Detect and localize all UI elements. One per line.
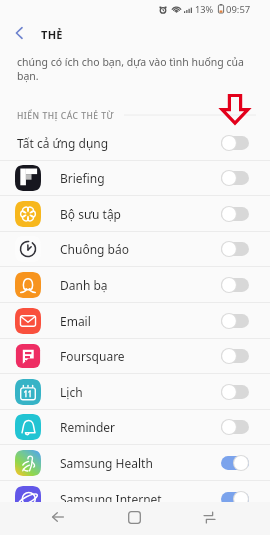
- button[interactable]: Reminder: [0, 409, 270, 445]
- staticText: Lịch: [60, 384, 83, 400]
- staticText: Chuông báo: [60, 241, 129, 257]
- staticText: Foursquare: [60, 348, 125, 364]
- button[interactable]: Samsung Internet: [0, 481, 270, 517]
- button[interactable]: On: [221, 491, 249, 507]
- button[interactable]: Chuông báo: [0, 231, 270, 267]
- button[interactable]: Off: [221, 206, 249, 222]
- button[interactable]: Off: [221, 135, 249, 151]
- staticText: Samsung Internet: [60, 491, 162, 507]
- button[interactable]: On: [221, 455, 249, 471]
- staticText: HIỂN THỊ CÁC THẺ TỪ: [17, 110, 114, 122]
- staticText: Danh bạ: [60, 277, 108, 293]
- button[interactable]: Home: [119, 502, 149, 532]
- staticText: 09:57: [226, 3, 251, 16]
- button[interactable]: Lịch: [0, 374, 270, 410]
- staticText: Samsung Health: [60, 455, 153, 471]
- button[interactable]: Off: [221, 313, 249, 329]
- button[interactable]: Navigate up: [9, 23, 29, 43]
- staticText: Tất cả ứng dụng: [17, 135, 109, 151]
- button[interactable]: Off: [221, 384, 249, 400]
- staticText: Briefing: [60, 170, 105, 186]
- button[interactable]: Off: [221, 170, 249, 186]
- staticText: chúng có ích cho bạn, dựa vào tình huống…: [17, 55, 244, 83]
- button[interactable]: Briefing: [0, 160, 270, 196]
- button[interactable]: Recent apps: [194, 502, 224, 532]
- staticText: THẺ: [41, 27, 63, 42]
- button[interactable]: Off: [221, 241, 249, 257]
- button[interactable]: Off: [221, 419, 249, 435]
- staticText: Reminder: [60, 419, 116, 435]
- button[interactable]: Samsung Health: [0, 445, 270, 481]
- button[interactable]: Bộ sưu tập: [0, 196, 270, 232]
- button[interactable]: Off: [221, 348, 249, 364]
- button[interactable]: Foursquare: [0, 338, 270, 374]
- button[interactable]: Tất cả ứng dụng: [0, 125, 270, 161]
- button[interactable]: Email: [0, 303, 270, 339]
- staticText: Bộ sưu tập: [60, 206, 121, 222]
- button[interactable]: Danh bạ: [0, 267, 270, 303]
- staticText: Email: [60, 313, 91, 329]
- button[interactable]: Back: [43, 502, 73, 532]
- button[interactable]: Off: [221, 277, 249, 293]
- staticText: 13%: [195, 3, 214, 16]
